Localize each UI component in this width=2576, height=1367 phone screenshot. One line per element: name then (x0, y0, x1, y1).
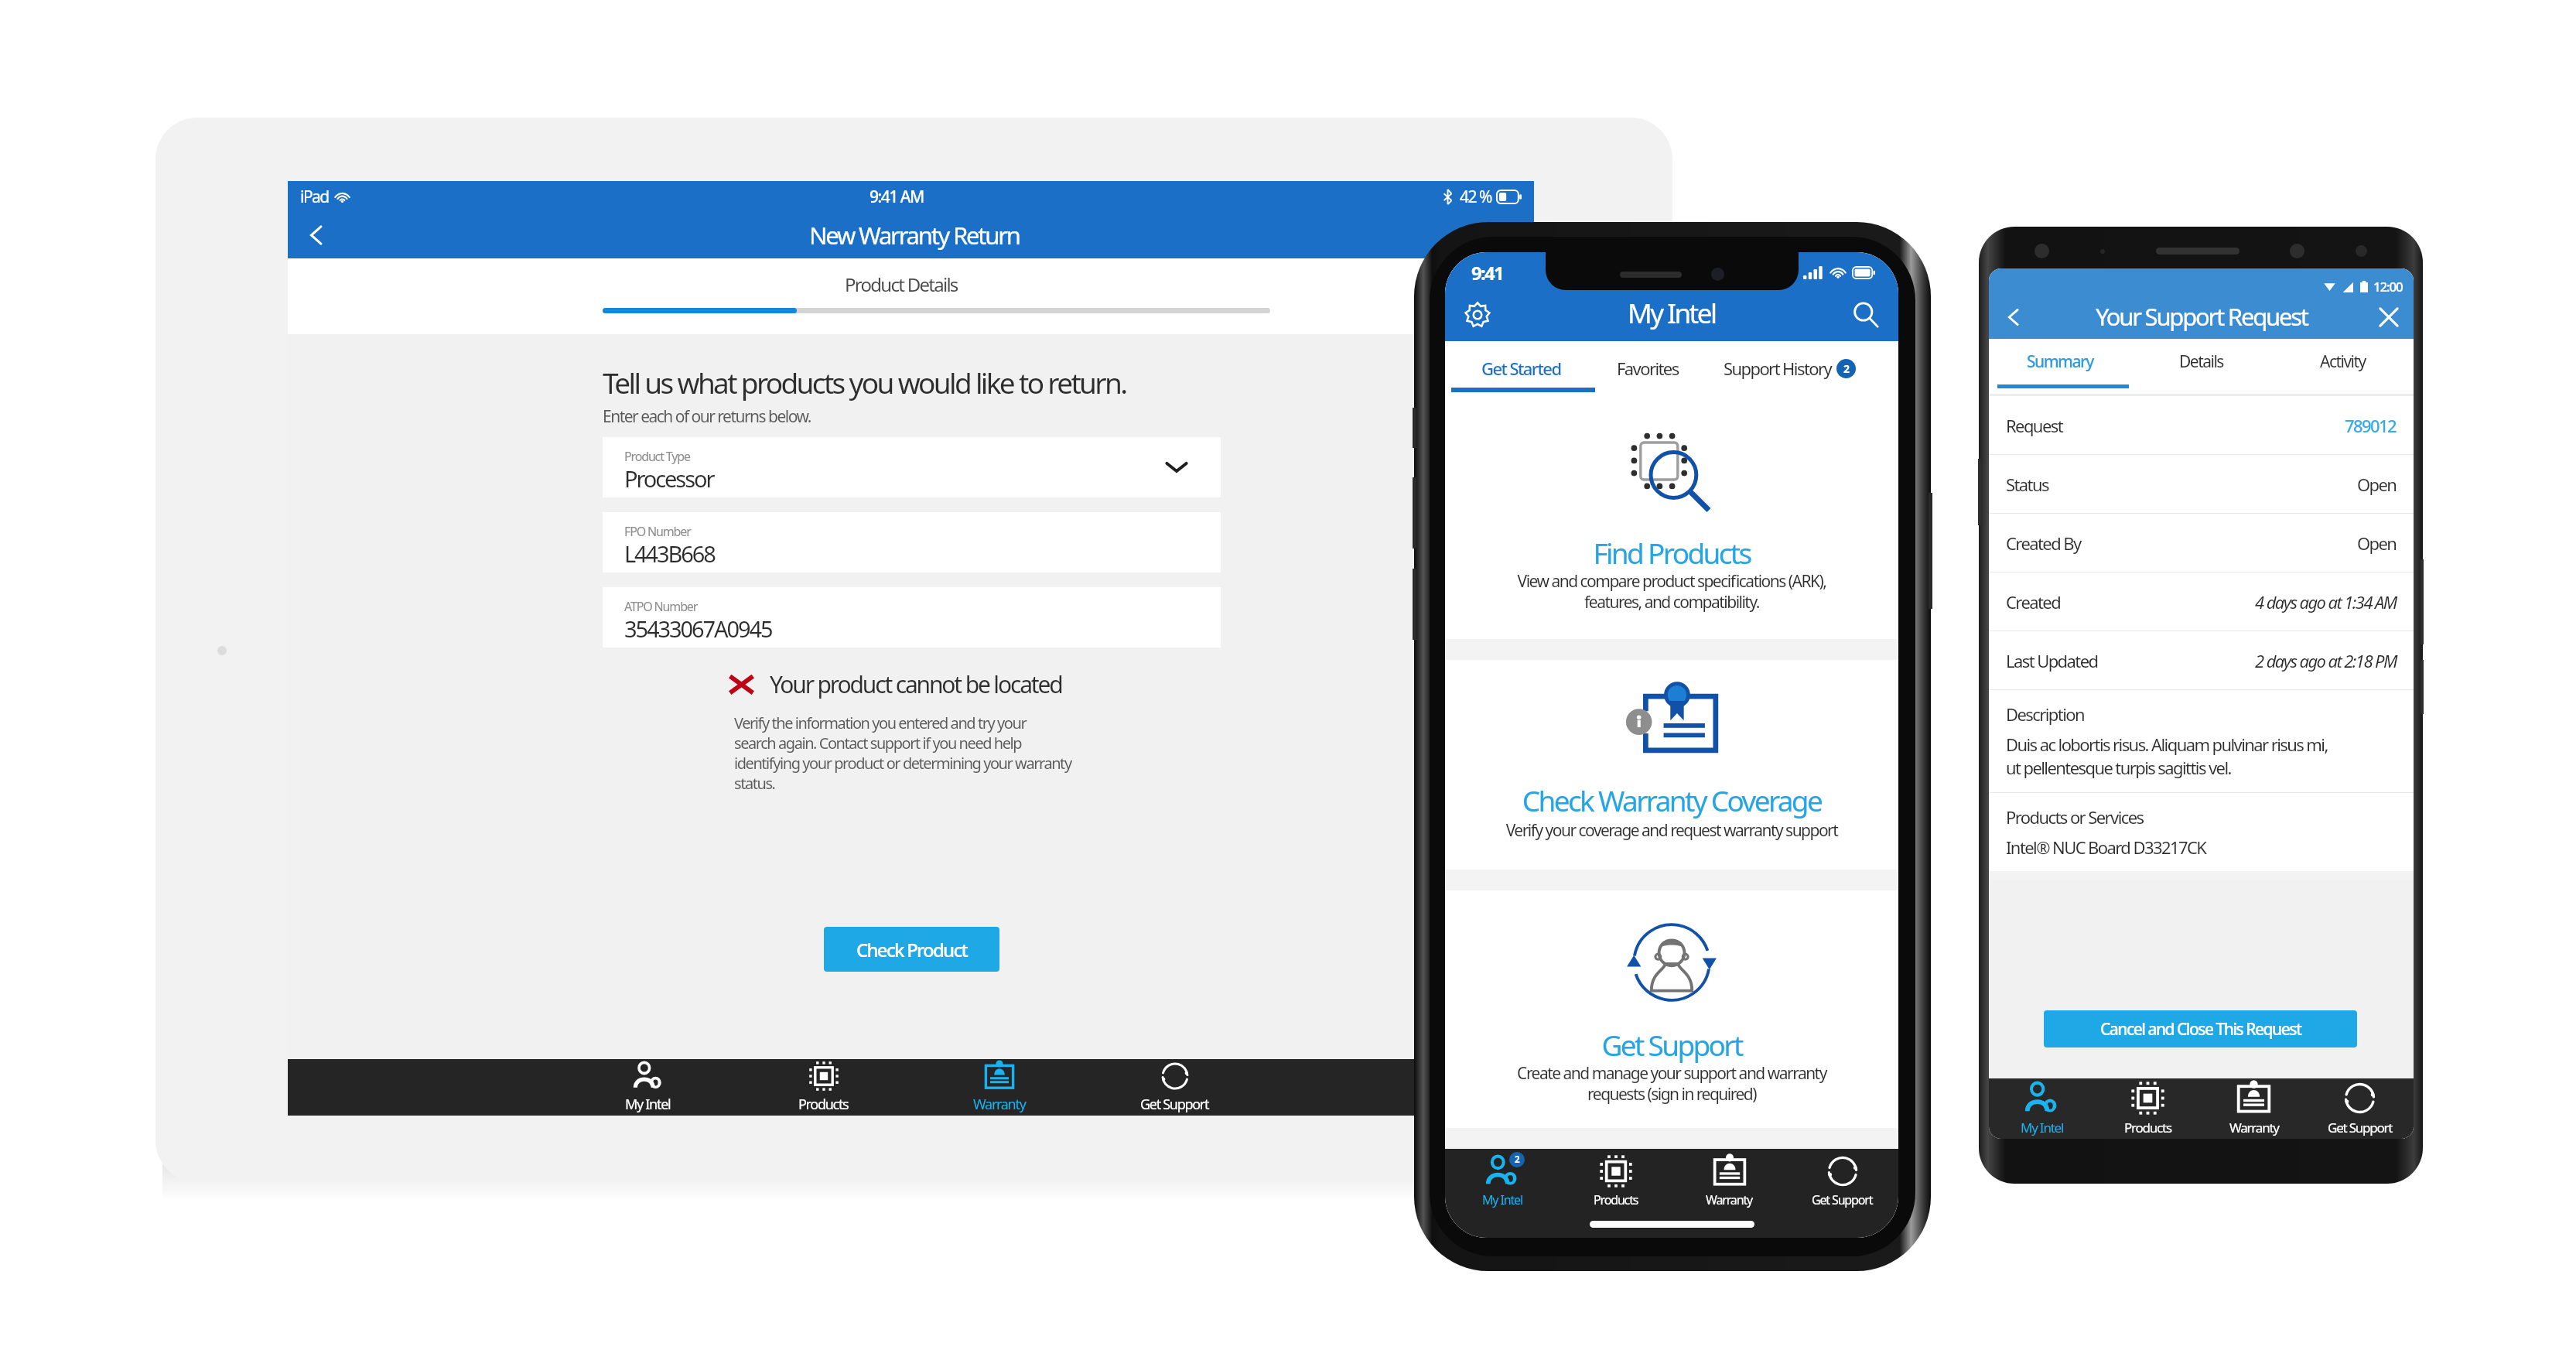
button[interactable]: Back (1995, 299, 2032, 336)
staticText: 4 days ago at 1:34 AM (2255, 590, 2397, 613)
staticText: Product Details (845, 272, 958, 297)
button[interactable]: My Intel (1989, 1078, 2095, 1139)
button[interactable]: Request (2006, 396, 2397, 454)
staticText: Products (2124, 1119, 2171, 1136)
button[interactable]: Activity (2272, 339, 2414, 394)
staticText: Tell us what products you would like to … (603, 363, 1126, 402)
staticText: Check Warranty Coverage (1445, 781, 1898, 819)
staticText: L443B668 (624, 538, 715, 569)
staticText: Enter each of our returns below. (603, 405, 811, 428)
staticText: Created By (2006, 531, 2081, 555)
button[interactable]: Find Products (1445, 400, 1898, 639)
staticText: iPad (300, 186, 329, 208)
staticText: Description (2006, 702, 2084, 726)
button[interactable]: My Intel (560, 1059, 736, 1116)
button[interactable] (1445, 341, 1584, 400)
button[interactable]: Get Support (1445, 890, 1898, 1128)
button[interactable]: ATPO Number (603, 587, 1221, 648)
staticText: Get Started (1481, 357, 1561, 380)
staticText: New Warranty Return (809, 219, 1020, 251)
button[interactable]: Created (2006, 572, 2397, 631)
staticText: Products or Services (2006, 805, 2144, 829)
staticText: Your product cannot be located (770, 668, 1062, 700)
button[interactable]: Check Warranty Coverage (1445, 660, 1898, 870)
staticText: 35433067A0945 (624, 613, 772, 644)
staticText: Open (2357, 531, 2397, 555)
button[interactable]: Last Updated (2006, 631, 2397, 689)
button[interactable]: Get Support (1087, 1059, 1262, 1116)
button[interactable]: Summary (1989, 339, 2130, 394)
staticText: 9:41 AM (869, 186, 924, 208)
button[interactable]: Warranty (911, 1059, 1087, 1116)
button[interactable] (1723, 341, 1898, 400)
staticText: Request (2006, 414, 2063, 437)
staticText: Created (2006, 590, 2061, 613)
button[interactable]: Products (2095, 1078, 2201, 1139)
button[interactable]: Check Product (824, 927, 999, 972)
button[interactable]: Search (1846, 295, 1886, 335)
staticText: 12:00 (2373, 278, 2403, 296)
button[interactable]: Close (2370, 299, 2407, 336)
staticText: Cancel and Close This Request (2100, 1018, 2301, 1041)
staticText: 789012 (2345, 414, 2397, 437)
button[interactable]: Product Type (603, 437, 1221, 497)
button[interactable]: Status (2006, 455, 2397, 513)
staticText: ATPO Number (624, 598, 698, 615)
staticText: Warranty (973, 1095, 1026, 1114)
button[interactable]: Cancel and Close This Request (2044, 1010, 2357, 1047)
button[interactable]: Get Support (1786, 1149, 1898, 1214)
staticText: Duis ac lobortis risus. Aliquam pulvinar… (2006, 733, 2328, 780)
staticText: Check Product (856, 937, 967, 962)
staticText: Status (2006, 473, 2048, 496)
button[interactable]: Get Support (2307, 1078, 2413, 1139)
staticText: Products (798, 1095, 849, 1114)
staticText: Find Products (1445, 533, 1898, 572)
staticText: Processor (624, 463, 714, 494)
button[interactable]: Created By (2006, 514, 2397, 572)
staticText: Get Support (1812, 1191, 1873, 1208)
staticText: 2 (1843, 361, 1849, 376)
staticText: Warranty (2229, 1119, 2279, 1136)
staticText: 9:41 (1471, 260, 1504, 285)
button[interactable]: FPO Number (603, 512, 1221, 572)
staticText: Verify your coverage and request warrant… (1464, 819, 1880, 842)
button[interactable]: Warranty (1672, 1149, 1786, 1214)
button[interactable]: Products (736, 1059, 911, 1116)
staticText: Last Updated (2006, 649, 2098, 672)
button[interactable] (1584, 341, 1723, 400)
staticText: 2 days ago at 2:18 PM (2255, 649, 2397, 672)
staticText: Favorites (1617, 357, 1679, 380)
button[interactable]: Details (2130, 339, 2272, 394)
staticText: My Intel (1482, 1191, 1522, 1208)
staticText: Activity (2320, 350, 2366, 373)
staticText: My Intel (1628, 295, 1716, 332)
staticText: Get Support (1140, 1095, 1209, 1114)
staticText: Verify the information you entered and t… (734, 713, 1105, 794)
staticText: Product Type (624, 448, 690, 465)
staticText: Intel® NUC Board D33217CK (2006, 836, 2206, 859)
staticText: Details (2179, 350, 2223, 373)
staticText: My Intel (625, 1095, 671, 1114)
staticText: Warranty (1706, 1191, 1753, 1208)
button[interactable]: Warranty (2201, 1078, 2307, 1139)
button[interactable]: Products (1559, 1149, 1672, 1214)
staticText: Get Support (1445, 1025, 1898, 1064)
staticText: Get Support (2328, 1119, 2393, 1136)
staticText: 2 (1515, 1153, 1519, 1166)
button[interactable]: Settings (1457, 295, 1498, 335)
button[interactable]: 2 (1445, 1149, 1559, 1214)
staticText: Your Support Request (2096, 300, 2308, 333)
staticText: Products (1594, 1191, 1638, 1208)
button[interactable]: Back (299, 217, 334, 253)
staticText: Summary (2027, 350, 2093, 373)
staticText: Support History (1724, 357, 1832, 380)
staticText: 42 % (1460, 186, 1491, 208)
staticText: View and compare product specifications … (1464, 570, 1880, 613)
staticText: My Intel (2021, 1119, 2064, 1136)
staticText: Open (2357, 473, 2397, 496)
staticText: Create and manage your support and warra… (1464, 1062, 1880, 1105)
staticText: FPO Number (624, 523, 691, 540)
